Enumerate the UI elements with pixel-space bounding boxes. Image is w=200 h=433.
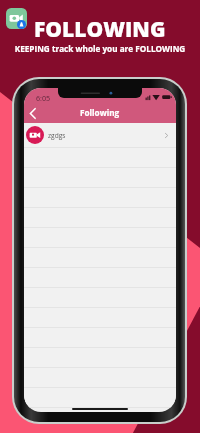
staticText: Following (80, 107, 120, 118)
button[interactable] (24, 388, 176, 407)
staticText: KEEPING track whole you are FOLLOWING (0, 43, 200, 54)
staticText: 6:05 (36, 93, 51, 103)
button[interactable]: zgdgs (24, 123, 176, 147)
staticText: zgdgs (48, 131, 66, 140)
button[interactable]: Back (26, 107, 39, 120)
staticText: FOLLOWING (34, 15, 166, 44)
